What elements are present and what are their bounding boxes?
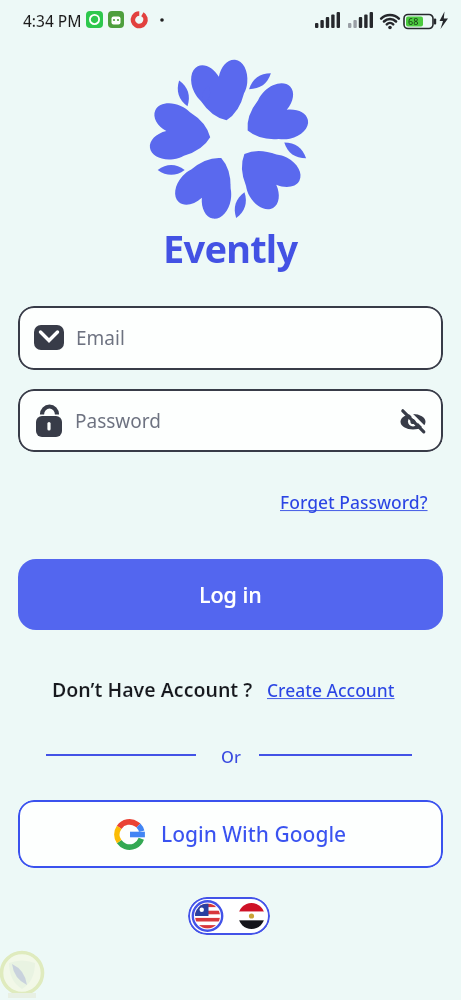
staticText: Email xyxy=(76,325,125,351)
staticText: Don’t Have Account ? xyxy=(52,676,253,703)
staticText: 4:34 PM xyxy=(23,10,82,31)
button[interactable]: Login With Google xyxy=(18,800,443,868)
staticText: Password xyxy=(75,408,161,434)
button[interactable]: Forget Password? xyxy=(280,490,428,514)
staticText: Log in xyxy=(199,580,262,609)
staticText: Or xyxy=(221,745,241,767)
staticText: Evently xyxy=(163,222,298,274)
button[interactable]: Log in xyxy=(18,559,443,630)
staticText: Login With Google xyxy=(161,820,347,849)
button[interactable] xyxy=(188,897,270,935)
staticText: 68 xyxy=(408,15,419,27)
button[interactable]: Create Account xyxy=(267,678,395,702)
button[interactable]: Password xyxy=(18,389,443,452)
button[interactable]: Email xyxy=(18,306,443,370)
